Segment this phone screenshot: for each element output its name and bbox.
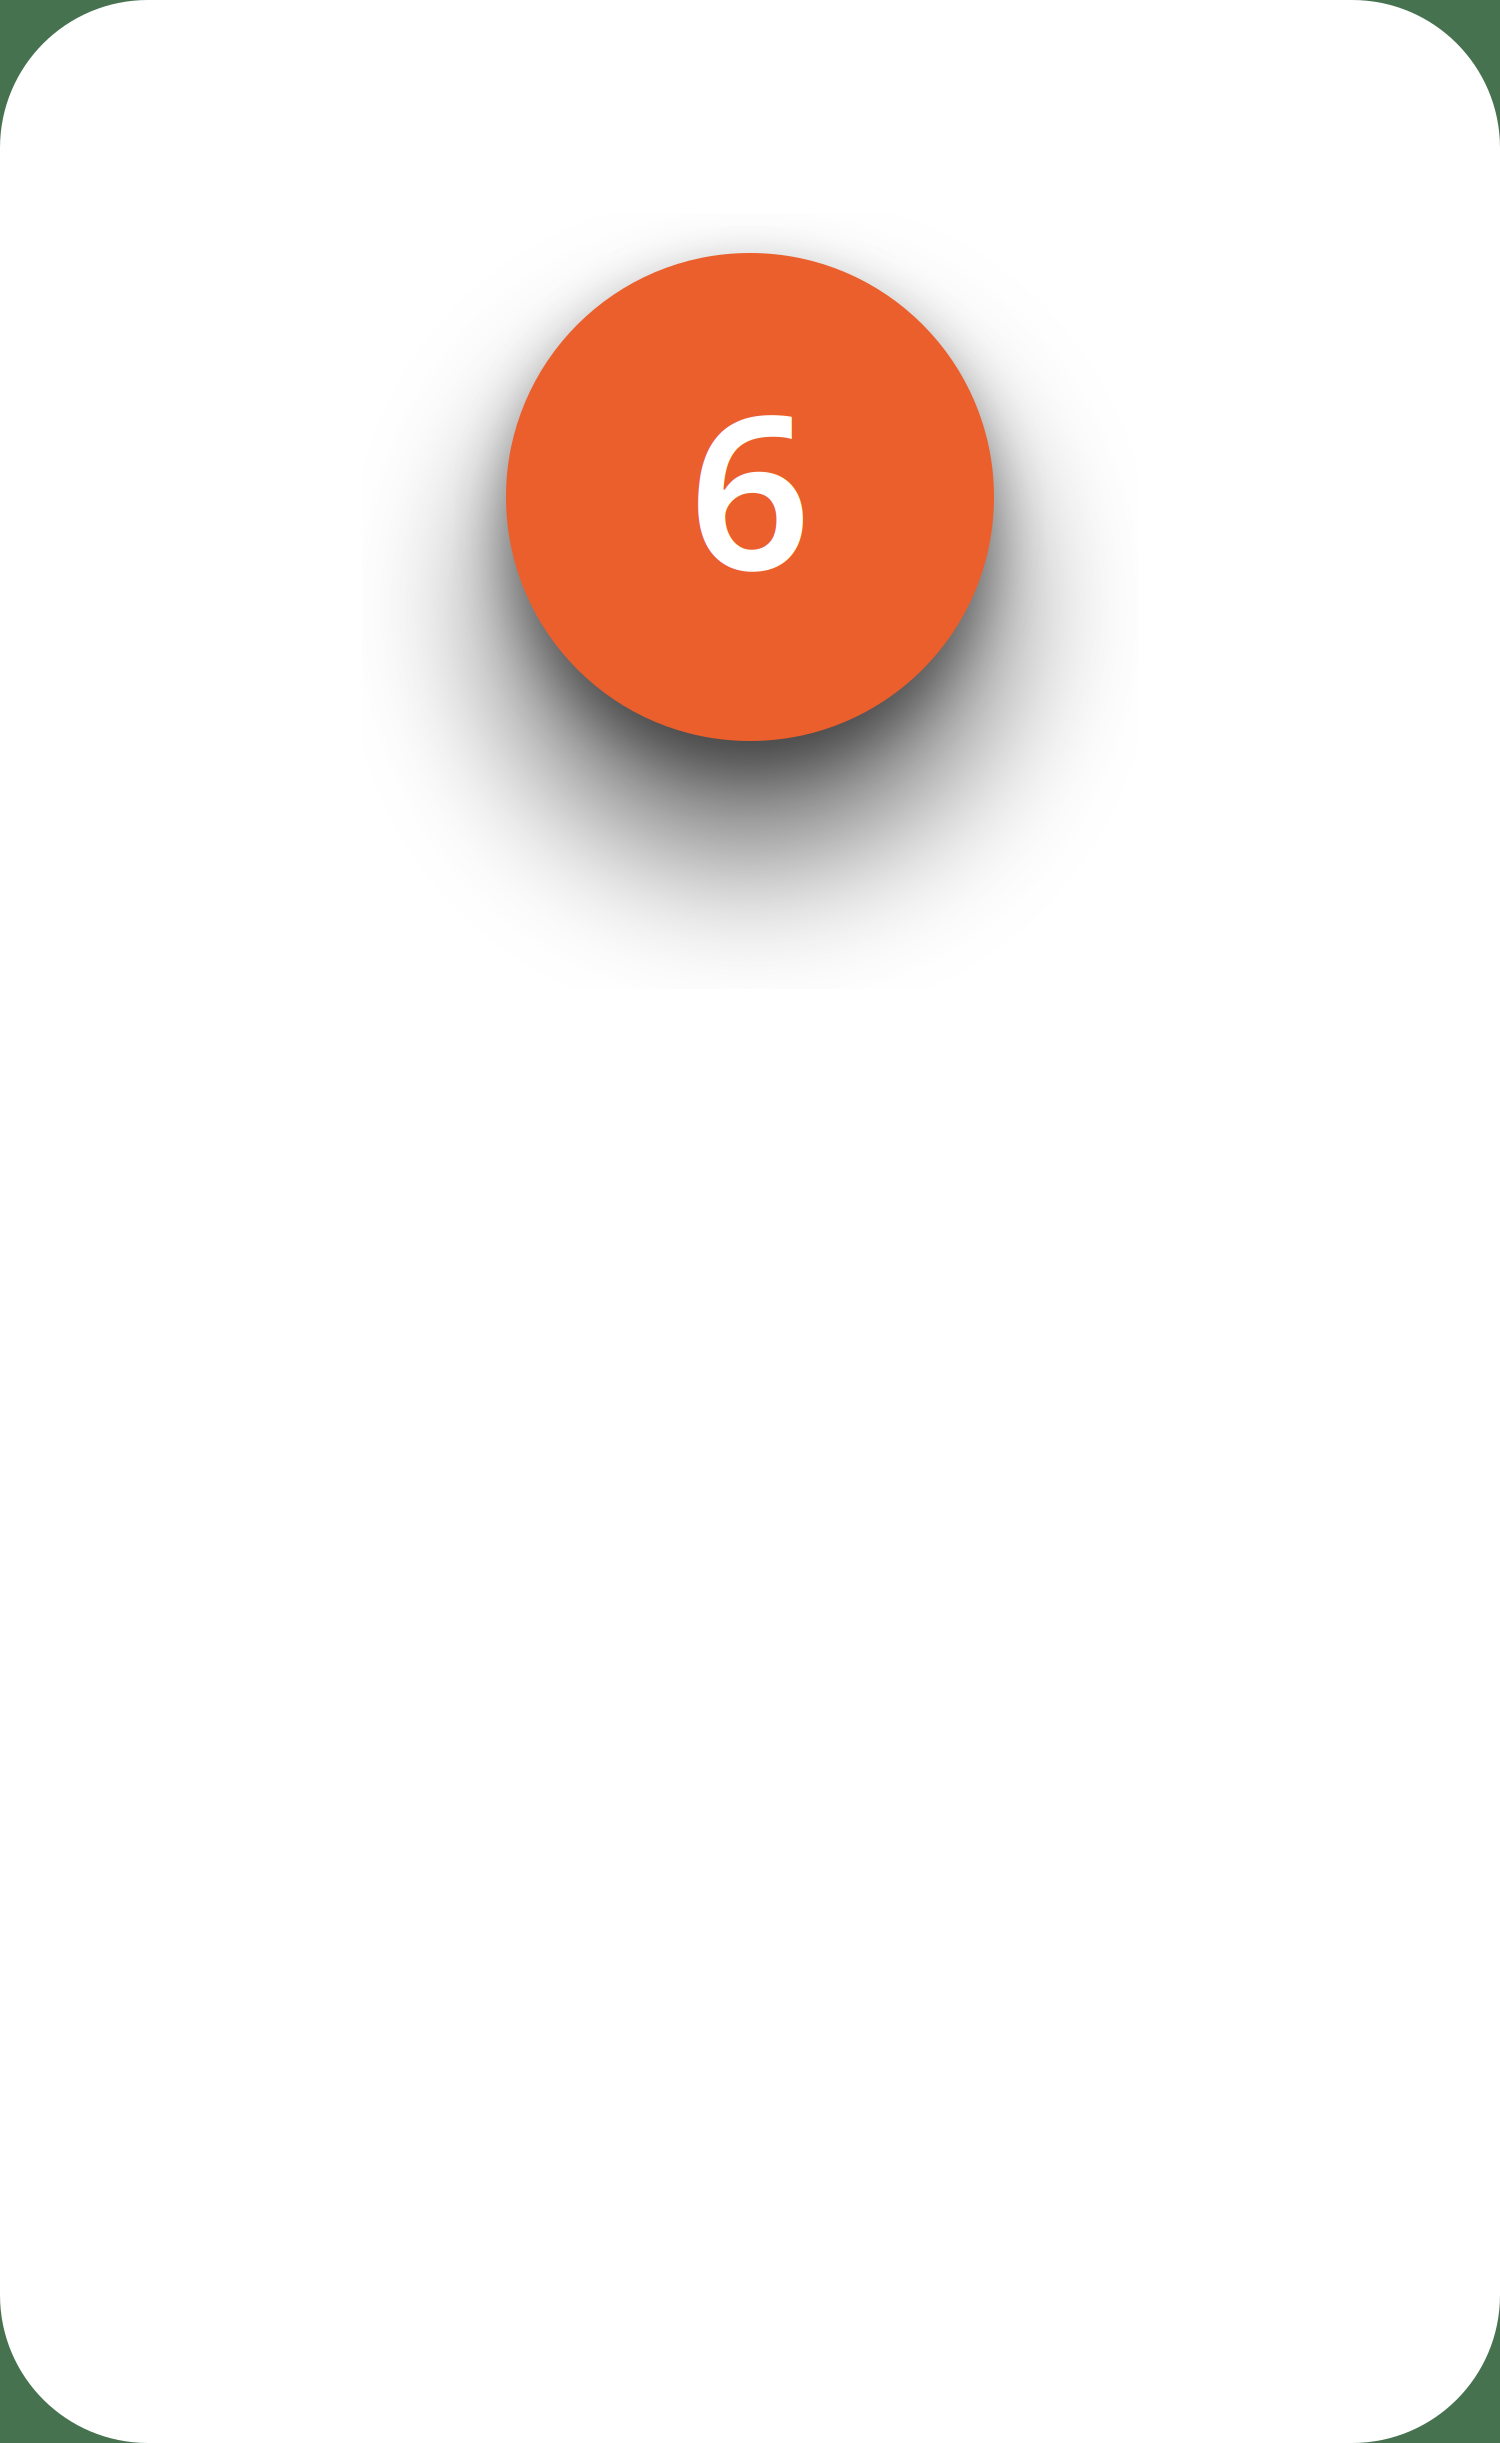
staticText: 6 — [689, 345, 811, 629]
button[interactable]: 6 — [506, 253, 994, 741]
